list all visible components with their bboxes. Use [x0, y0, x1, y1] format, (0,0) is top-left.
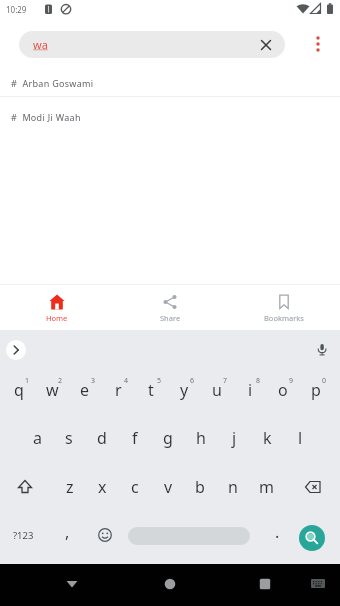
staticText: 4 — [124, 376, 129, 385]
button[interactable]: e — [69, 366, 101, 414]
button[interactable] — [308, 34, 328, 54]
staticText: y — [180, 379, 189, 401]
button[interactable]: Share — [113, 285, 227, 330]
button[interactable]: # Arban Goswami — [0, 66, 340, 100]
button[interactable]: l — [284, 414, 316, 462]
button[interactable]: p — [300, 366, 332, 414]
staticText: n — [228, 476, 238, 498]
staticText: Bookmarks — [264, 313, 304, 323]
button[interactable]: ?123 — [4, 511, 42, 559]
staticText: 6 — [190, 376, 195, 385]
staticText: b — [195, 476, 205, 498]
button[interactable]: q — [3, 366, 35, 414]
staticText: 8 — [256, 376, 261, 385]
button[interactable] — [306, 572, 330, 596]
staticText: 9 — [289, 376, 294, 385]
button[interactable]: b — [184, 463, 216, 511]
staticText: Home — [46, 313, 68, 323]
staticText: r — [115, 379, 122, 401]
button[interactable]: x — [86, 463, 118, 511]
button[interactable]: w — [36, 366, 68, 414]
button[interactable]: z — [54, 463, 86, 511]
staticText: 0 — [322, 376, 327, 385]
staticText: a — [33, 427, 42, 449]
button[interactable]: s — [53, 414, 85, 462]
button[interactable] — [89, 519, 121, 551]
button[interactable]: h — [185, 414, 217, 462]
staticText: 2 — [58, 376, 63, 385]
button[interactable]: , — [51, 508, 83, 556]
button[interactable]: n — [217, 463, 249, 511]
staticText: x — [98, 476, 107, 498]
button[interactable]: d — [86, 414, 118, 462]
staticText: ?123 — [13, 529, 34, 542]
staticText: e — [80, 379, 90, 401]
staticText: l — [298, 427, 303, 449]
button[interactable]: u — [201, 366, 233, 414]
staticText: z — [66, 476, 74, 498]
button[interactable] — [128, 527, 250, 545]
staticText: t — [148, 379, 154, 401]
button[interactable]: c — [119, 463, 151, 511]
staticText: i — [248, 379, 253, 401]
button[interactable]: j — [218, 414, 250, 462]
staticText: v — [164, 476, 173, 498]
button[interactable] — [297, 471, 329, 503]
staticText: s — [65, 427, 73, 449]
button[interactable] — [315, 343, 329, 357]
staticText: k — [263, 427, 272, 449]
button[interactable] — [251, 570, 279, 598]
button[interactable]: t — [135, 366, 167, 414]
button[interactable]: # Modi Ji Waah — [0, 100, 340, 134]
button[interactable]: f — [119, 414, 151, 462]
staticText: u — [212, 379, 222, 401]
staticText: q — [14, 379, 24, 401]
button[interactable]: v — [152, 463, 184, 511]
staticText: m — [259, 476, 274, 498]
staticText: 7 — [223, 376, 228, 385]
staticText: 5 — [157, 376, 162, 385]
button[interactable]: m — [250, 463, 282, 511]
staticText: 10:29 — [6, 4, 27, 15]
button[interactable]: i — [234, 366, 266, 414]
button[interactable]: wa — [19, 31, 285, 58]
staticText: # Arban Goswami — [11, 77, 94, 89]
staticText: f — [132, 427, 138, 449]
staticText: o — [278, 379, 288, 401]
staticText: Share — [160, 313, 181, 323]
staticText: 3 — [91, 376, 96, 385]
staticText: w — [46, 379, 59, 401]
button[interactable]: k — [251, 414, 283, 462]
button[interactable] — [258, 37, 274, 53]
staticText: c — [131, 476, 139, 498]
button[interactable]: o — [267, 366, 299, 414]
button[interactable]: . — [261, 508, 293, 556]
staticText: # Modi Ji Waah — [11, 111, 81, 123]
button[interactable]: a — [21, 414, 53, 462]
button[interactable]: Home — [0, 285, 113, 330]
staticText: , — [65, 521, 70, 543]
button[interactable]: y — [168, 366, 200, 414]
button[interactable]: r — [102, 366, 134, 414]
staticText: p — [311, 379, 321, 401]
staticText: wa — [33, 37, 48, 52]
button[interactable] — [9, 471, 41, 503]
staticText: d — [97, 427, 107, 449]
button[interactable] — [156, 570, 184, 598]
staticText: j — [232, 427, 237, 449]
button[interactable]: Bookmarks — [227, 285, 340, 330]
staticText: . — [275, 521, 280, 543]
staticText: h — [196, 427, 206, 449]
staticText: g — [163, 427, 173, 449]
button[interactable] — [299, 525, 325, 551]
button[interactable] — [6, 340, 26, 360]
button[interactable] — [58, 570, 86, 598]
button[interactable]: g — [152, 414, 184, 462]
staticText: 1 — [25, 376, 30, 385]
